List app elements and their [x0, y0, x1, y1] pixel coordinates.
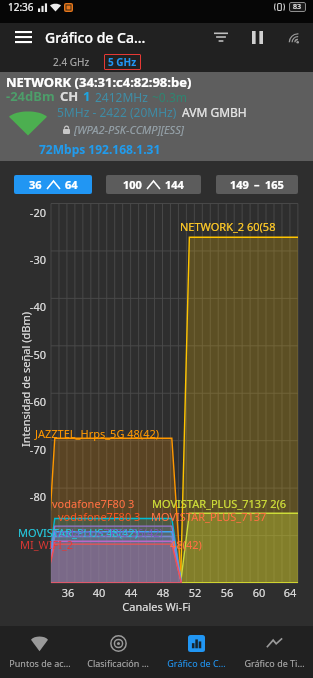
staticText: 1 [83, 87, 91, 105]
staticText: Puntos de ac… [9, 657, 71, 669]
button[interactable]: 2.4 GHz [51, 53, 92, 71]
staticText: 2412MHz [95, 89, 148, 105]
staticText: Gráfico de Ti… [244, 657, 305, 669]
staticText: 36 [29, 177, 42, 192]
staticText: -50 [16, 347, 46, 362]
staticText: 144 [165, 177, 184, 192]
staticText: -40 [16, 299, 46, 314]
staticText: 72Mbps 192.168.1.31 [39, 141, 161, 157]
staticText: AVM GMBH [182, 104, 247, 120]
staticText: -24dBm [6, 87, 55, 105]
staticText: -30 [16, 252, 46, 267]
staticText: vodafone7F80 3 [52, 496, 135, 511]
staticText: -20 [16, 205, 46, 220]
staticText: Canales Wi-Fi [0, 599, 313, 614]
button[interactable]: Puntos de ac… [0, 629, 79, 675]
button[interactable]: Pause [245, 25, 269, 49]
button[interactable]: Scanning [281, 25, 305, 49]
staticText: Gráfico de Ca… [45, 28, 146, 47]
staticText: MOVISTAR_PLUS_7137 2(6 [152, 496, 287, 511]
staticText: -60 [16, 394, 46, 409]
staticText: vodafone7F80 36(42) [55, 525, 163, 540]
button[interactable]: 149 [216, 175, 298, 194]
staticText: ~0.3m [152, 89, 188, 105]
staticText: NETWORK_2 60(58 [180, 219, 276, 234]
staticText: 44 [119, 585, 143, 600]
staticText: 100 [123, 177, 142, 192]
staticText: 149 [230, 177, 249, 192]
staticText: 52 [183, 585, 207, 600]
button[interactable]: Open navigation drawer [13, 27, 33, 47]
staticText: 36 [56, 585, 80, 600]
button[interactable]: 100 [106, 175, 201, 194]
staticText: JAZZTEL_Hrps_5G 48(42) [35, 426, 160, 441]
staticText: CH [60, 87, 79, 105]
staticText: 83 [293, 2, 302, 12]
staticText: [WPA2-PSK-CCMP][ESS] [74, 122, 184, 137]
button[interactable]: Filter [209, 25, 233, 49]
staticText: Intensidad de señal (dBm) [17, 304, 32, 454]
staticText: 60 [247, 585, 271, 600]
staticText: 56 [215, 585, 239, 600]
staticText: MOVISTAR_PLUS_7137 [151, 509, 267, 524]
staticText: 48(42) [170, 537, 202, 552]
staticText: 48 [151, 585, 175, 600]
staticText: vodafone7F80 3 [58, 509, 141, 524]
staticText: 12:36 [8, 0, 34, 14]
button[interactable]: 36 [14, 175, 92, 194]
button[interactable]: 5 GHz [104, 54, 141, 70]
staticText: 2.4 GHz [53, 55, 90, 69]
staticText: 5 GHz [108, 55, 137, 69]
staticText: Gráfico de C… [167, 657, 226, 669]
staticText: 64 [278, 585, 302, 600]
staticText: – [254, 177, 260, 192]
staticText: NETWORK (34:31:c4:82:98:be) [6, 73, 192, 91]
staticText: -70 [16, 442, 46, 457]
button[interactable]: Gráfico de C… [157, 629, 235, 675]
staticText: 40 [87, 585, 111, 600]
button[interactable]: Gráfico de Ti… [235, 629, 313, 675]
button[interactable]: Clasificación … [79, 629, 157, 675]
staticText: MOVISTAR_PLUS 48(42) [18, 525, 138, 540]
staticText: Clasificación … [87, 657, 149, 669]
staticText: 5MHz - 2422 (20MHz) [57, 104, 177, 120]
staticText: 165 [265, 177, 284, 192]
staticText: 64 [65, 177, 78, 192]
staticText: MI_WIFI_2 [20, 537, 74, 552]
staticText: -80 [16, 489, 46, 504]
